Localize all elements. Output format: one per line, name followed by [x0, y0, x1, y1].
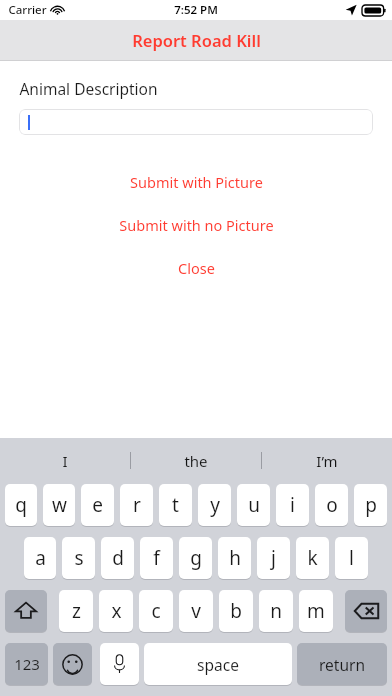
staticText: d — [112, 545, 124, 571]
staticText: y — [210, 492, 220, 518]
button[interactable]: s — [62, 537, 95, 579]
staticText: p — [365, 492, 377, 518]
button[interactable]: j — [257, 537, 290, 579]
button[interactable]: q — [5, 484, 37, 526]
staticText: j — [271, 545, 276, 571]
staticText: Submit with Picture — [130, 172, 263, 192]
button[interactable]: f — [140, 537, 173, 579]
button[interactable]: Submit with no Picture — [0, 214, 392, 235]
button[interactable]: y — [198, 484, 231, 526]
button[interactable]: z — [59, 590, 93, 632]
button[interactable]: x — [99, 590, 133, 632]
button[interactable]: m — [299, 590, 333, 632]
staticText: o — [326, 492, 338, 518]
staticText: 7:52 PM — [174, 2, 218, 18]
staticText: Carrier — [8, 2, 47, 18]
button[interactable]: Dictation — [100, 643, 139, 685]
staticText: h — [229, 545, 241, 571]
button[interactable]: space — [144, 643, 292, 685]
button[interactable]: e — [81, 484, 114, 526]
staticText: f — [153, 545, 160, 571]
button[interactable]: c — [139, 590, 173, 632]
button[interactable]: Shift — [5, 590, 47, 632]
staticText: e — [92, 492, 103, 518]
button[interactable]: a — [24, 537, 56, 579]
staticText: r — [133, 492, 141, 518]
button[interactable]: b — [219, 590, 253, 632]
button[interactable]: v — [179, 590, 213, 632]
staticText: Report Road Kill — [132, 29, 261, 51]
staticText: s — [74, 545, 84, 571]
staticText: l — [349, 545, 354, 571]
button[interactable]: Backspace — [345, 590, 387, 632]
button[interactable]: h — [218, 537, 251, 579]
staticText: z — [72, 598, 81, 624]
staticText: v — [191, 598, 201, 624]
staticText: m — [307, 598, 325, 624]
button[interactable]: t — [159, 484, 192, 526]
staticText: Close — [178, 258, 215, 278]
button[interactable]: Emoji — [53, 643, 92, 685]
button[interactable]: Close — [0, 257, 392, 278]
staticText: k — [307, 545, 318, 571]
button[interactable] — [19, 109, 373, 135]
staticText: n — [270, 598, 282, 624]
staticText: t — [172, 492, 179, 518]
button[interactable]: i — [276, 484, 309, 526]
staticText: b — [230, 598, 242, 624]
staticText: Submit with no Picture — [119, 215, 274, 235]
staticText: i — [290, 492, 295, 518]
staticText: space — [197, 654, 239, 675]
button[interactable]: return — [297, 643, 387, 685]
staticText: q — [15, 492, 27, 518]
staticText: g — [190, 545, 202, 571]
staticText: 123 — [14, 654, 40, 674]
button[interactable]: w — [43, 484, 75, 526]
staticText: x — [111, 598, 122, 624]
button[interactable]: I’m — [262, 441, 392, 480]
button[interactable]: r — [120, 484, 153, 526]
staticText: Animal Description — [19, 78, 158, 99]
button[interactable]: Submit with Picture — [0, 171, 392, 192]
button[interactable]: p — [354, 484, 387, 526]
button[interactable]: the — [131, 441, 261, 480]
staticText: a — [35, 545, 46, 571]
button[interactable]: k — [296, 537, 329, 579]
staticText: I — [62, 451, 68, 471]
button[interactable]: d — [101, 537, 134, 579]
staticText: u — [248, 492, 260, 518]
button[interactable]: n — [259, 590, 293, 632]
staticText: c — [151, 598, 161, 624]
button[interactable]: 123 — [5, 643, 48, 685]
button[interactable]: l — [335, 537, 368, 579]
button[interactable]: u — [237, 484, 270, 526]
button[interactable]: o — [315, 484, 348, 526]
staticText: I’m — [316, 451, 338, 471]
button[interactable]: g — [179, 537, 212, 579]
staticText: w — [52, 492, 67, 518]
staticText: the — [184, 451, 208, 471]
button[interactable]: I — [0, 441, 130, 480]
staticText: return — [319, 654, 365, 675]
